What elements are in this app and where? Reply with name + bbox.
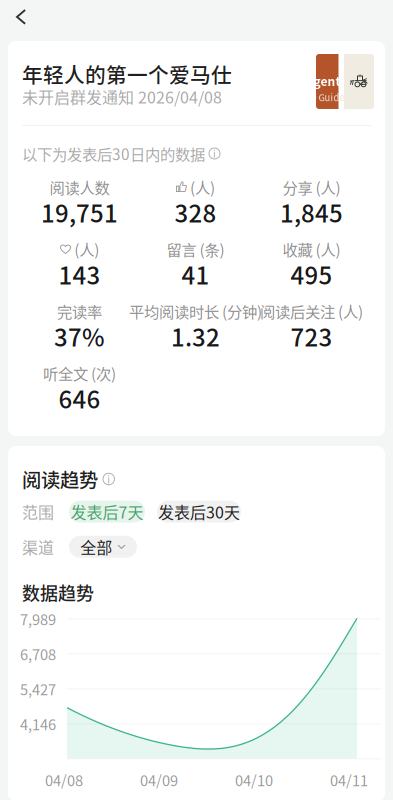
staticText: 以下为发表后30日内的数据 xyxy=(22,142,205,165)
staticText: 全部 xyxy=(80,535,112,558)
staticText: 1,845 xyxy=(280,195,343,229)
staticText: (人) xyxy=(190,176,215,198)
staticText: 分享 (人) xyxy=(282,176,340,198)
staticText: 4,146 xyxy=(20,713,56,734)
staticText: 阅读人数 xyxy=(49,176,109,198)
staticText: 收藏 (人) xyxy=(282,238,340,260)
staticText: Agent xyxy=(305,72,340,89)
staticText: i xyxy=(213,146,216,160)
staticText: (人) xyxy=(74,238,99,260)
staticText: 5,427 xyxy=(20,678,56,699)
staticText: i xyxy=(107,472,110,486)
staticText: 数据趋势 xyxy=(22,579,94,605)
staticText: 年轻人的第一个爱马仕 xyxy=(22,59,232,89)
staticText: 04/08 xyxy=(45,769,83,790)
staticText: 阅读趋势 xyxy=(22,465,98,493)
staticText: 阅读后关注 (人) xyxy=(260,300,363,322)
staticText: 留言 (条) xyxy=(166,238,224,260)
staticText: 6,708 xyxy=(20,643,56,664)
staticText: 1.32 xyxy=(171,319,220,353)
staticText: 发表后30天 xyxy=(158,500,240,523)
staticText: 完读率 xyxy=(57,300,102,322)
staticText: 328 xyxy=(174,195,216,229)
staticText: 听全文 (次) xyxy=(43,362,116,384)
staticText: 723 xyxy=(290,319,332,353)
button[interactable]: Back xyxy=(0,0,42,34)
staticText: 04/11 xyxy=(330,769,368,790)
staticText: 7,989 xyxy=(20,608,56,629)
staticText: 495 xyxy=(290,257,332,291)
staticText: 19,751 xyxy=(41,195,118,229)
staticText: 04/10 xyxy=(235,769,273,790)
staticText: 646 xyxy=(58,381,100,415)
staticText: 04/09 xyxy=(140,769,178,790)
button[interactable]: 全部 xyxy=(69,536,137,558)
staticText: 渠道 xyxy=(22,535,54,558)
staticText: he Guide xyxy=(305,90,344,104)
staticText: 37% xyxy=(54,319,105,353)
staticText: 发表后7天 xyxy=(70,500,143,523)
staticText: 平均阅读时长 (分钟) xyxy=(129,300,262,322)
staticText: 143 xyxy=(58,257,100,291)
button[interactable]: 发表后7天 xyxy=(69,501,145,523)
staticText: 范围 xyxy=(22,500,54,523)
staticText: 41 xyxy=(181,257,209,291)
staticText: 未开启群发通知 2026/04/08 xyxy=(22,85,222,108)
button[interactable]: 发表后30天 xyxy=(157,501,241,523)
